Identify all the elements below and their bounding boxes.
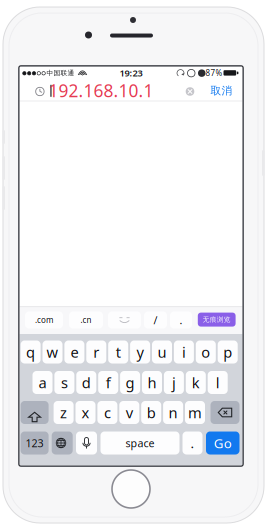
- button[interactable]: r: [0, 0, 274, 530]
- staticText: l: [216, 373, 220, 392]
- button[interactable]: p: [0, 0, 274, 530]
- button[interactable]: w: [0, 0, 274, 530]
- staticText: q: [26, 342, 35, 362]
- staticText: b: [147, 403, 156, 422]
- button[interactable]: h: [0, 0, 274, 530]
- staticText: h: [147, 373, 156, 392]
- button[interactable]: Home: [0, 0, 274, 530]
- staticText: 取消: [210, 84, 232, 97]
- button[interactable]: c: [0, 0, 274, 530]
- staticText: w: [46, 342, 58, 362]
- staticText: a: [38, 373, 46, 392]
- staticText: 19:23: [119, 67, 142, 79]
- staticText: m: [188, 403, 202, 422]
- button[interactable]: space: [0, 0, 274, 530]
- staticText: g: [126, 373, 135, 392]
- staticText: r: [93, 342, 99, 362]
- button[interactable]: Delete: [0, 0, 274, 530]
- staticText: t: [116, 342, 121, 362]
- staticText: x: [81, 403, 89, 422]
- button[interactable]: Clear text: [0, 0, 274, 530]
- button[interactable]: Go: [0, 0, 274, 530]
- button[interactable]: o: [0, 0, 274, 530]
- button[interactable]: z: [0, 0, 274, 530]
- staticText: d: [82, 373, 91, 392]
- staticText: z: [60, 403, 67, 422]
- button[interactable]: 无痕浏览: [0, 0, 274, 530]
- button[interactable]: x: [0, 0, 274, 530]
- button[interactable]: .: [0, 0, 274, 530]
- button[interactable]: 取消: [0, 0, 274, 530]
- staticText: p: [223, 342, 232, 362]
- button[interactable]: Shift: [0, 0, 274, 530]
- button[interactable]: q: [0, 0, 274, 530]
- button[interactable]: .com: [0, 0, 274, 530]
- button[interactable]: l: [0, 0, 274, 530]
- button[interactable]: v: [0, 0, 274, 530]
- staticText: k: [192, 373, 200, 392]
- button[interactable]: t: [0, 0, 274, 530]
- staticText: j: [172, 373, 176, 392]
- button[interactable]: b: [0, 0, 274, 530]
- button[interactable]: k: [0, 0, 274, 530]
- button[interactable]: a: [0, 0, 274, 530]
- staticText: v: [126, 403, 133, 422]
- button[interactable]: s: [0, 0, 274, 530]
- button[interactable]: Next keyboard: [0, 0, 274, 530]
- staticText: .com: [35, 315, 53, 325]
- staticText: .: [179, 313, 182, 327]
- staticText: f: [106, 373, 111, 392]
- staticText: Go: [214, 434, 232, 452]
- staticText: n: [169, 403, 178, 422]
- staticText: .cn: [80, 315, 91, 325]
- button[interactable]: /: [0, 0, 274, 530]
- staticText: .: [190, 434, 194, 452]
- button[interactable]: f: [0, 0, 274, 530]
- button[interactable]: 123: [0, 0, 274, 530]
- button[interactable]: y: [0, 0, 274, 530]
- staticText: /: [153, 313, 157, 327]
- button[interactable]: g: [0, 0, 274, 530]
- button[interactable]: Emoji: [0, 0, 274, 530]
- staticText: i: [182, 342, 186, 362]
- staticText: y: [137, 342, 144, 362]
- staticText: space: [125, 436, 154, 450]
- staticText: u: [157, 342, 166, 362]
- button[interactable]: u: [0, 0, 274, 530]
- button[interactable]: i: [0, 0, 274, 530]
- button[interactable]: .: [0, 0, 274, 530]
- staticText: 中国联通: [46, 69, 74, 77]
- staticText: 87%: [205, 68, 222, 78]
- staticText: 无痕浏览: [203, 315, 231, 324]
- button[interactable]: Dictation: [0, 0, 274, 530]
- button[interactable]: m: [0, 0, 274, 530]
- staticText: e: [70, 342, 78, 362]
- button[interactable]: d: [0, 0, 274, 530]
- staticText: c: [104, 403, 111, 422]
- staticText: 192.168.10.1: [48, 79, 153, 102]
- button[interactable]: n: [0, 0, 274, 530]
- button[interactable]: .cn: [0, 0, 274, 530]
- button[interactable]: j: [0, 0, 274, 530]
- staticText: s: [61, 373, 68, 392]
- button[interactable]: e: [0, 0, 274, 530]
- staticText: o: [201, 342, 210, 362]
- staticText: 123: [26, 436, 44, 450]
